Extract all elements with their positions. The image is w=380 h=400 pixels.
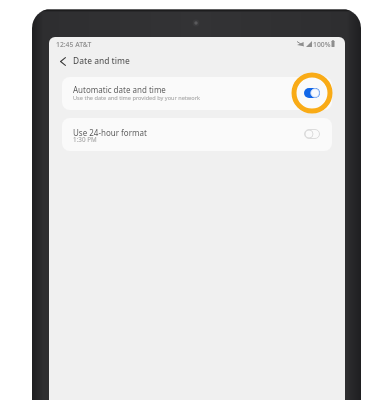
- button[interactable]: Back: [54, 51, 71, 71]
- button[interactable]: Switch off: [291, 113, 333, 155]
- button[interactable]: Switch on: [291, 72, 333, 114]
- staticText: Automatic date and time: [73, 84, 166, 95]
- staticText: 1:30 PM: [73, 135, 97, 144]
- button[interactable]: Automatic date and time: [62, 77, 332, 110]
- staticText: Use 24-hour format: [73, 127, 147, 138]
- button[interactable]: Use 24-hour format: [62, 118, 332, 151]
- staticText: Date and time: [73, 55, 130, 66]
- staticText: 100%: [313, 40, 331, 49]
- staticText: 12:45 AT&T: [56, 40, 92, 49]
- staticText: Use the date and time provided by your n…: [73, 94, 200, 102]
